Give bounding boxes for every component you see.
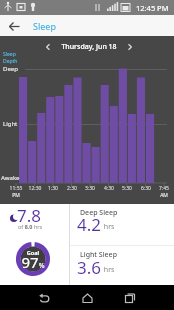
staticText: hrs [102,222,115,232]
staticText: Light Sleep [80,250,117,260]
button[interactable] [7,19,21,33]
staticText: of 8.0 hrs [18,223,43,230]
staticText: Deep [3,65,18,73]
staticText: 3.6 [77,256,102,279]
button[interactable] [70,246,174,285]
staticText: Thursday, Jun 18 [52,42,126,52]
staticText: hrs [102,265,115,275]
staticText: 2:30 [62,185,82,192]
staticText: 7.8 [17,204,42,227]
staticText: 11:55 [6,185,26,192]
staticText: Awake [1,174,20,182]
staticText: PM [6,192,26,199]
staticText: 4:30 [99,185,119,192]
staticText: 1:30 [43,185,63,192]
staticText: 5:30 [117,185,137,192]
staticText: 3:30 [80,185,100,192]
staticText: Light [3,120,18,128]
staticText: Deep Sleep [80,208,118,218]
staticText: AM [154,192,174,199]
staticText: 12:30 [25,185,45,192]
staticText: 12:45 PM [136,3,169,13]
button[interactable]: Thursday, Jun 18 [44,42,134,52]
staticText: 7:45 [154,185,174,192]
staticText: Goal [15,249,51,256]
staticText: 6:30 [136,185,156,192]
button[interactable] [81,292,93,304]
button[interactable]: 7.8 [0,204,69,285]
button[interactable] [70,204,174,245]
button[interactable] [38,292,50,304]
staticText: 4.2 [77,213,102,236]
button[interactable] [124,292,136,304]
staticText: Sleep Depth [3,51,18,64]
staticText: Sleep [33,20,56,32]
staticText: 97% [15,252,51,272]
